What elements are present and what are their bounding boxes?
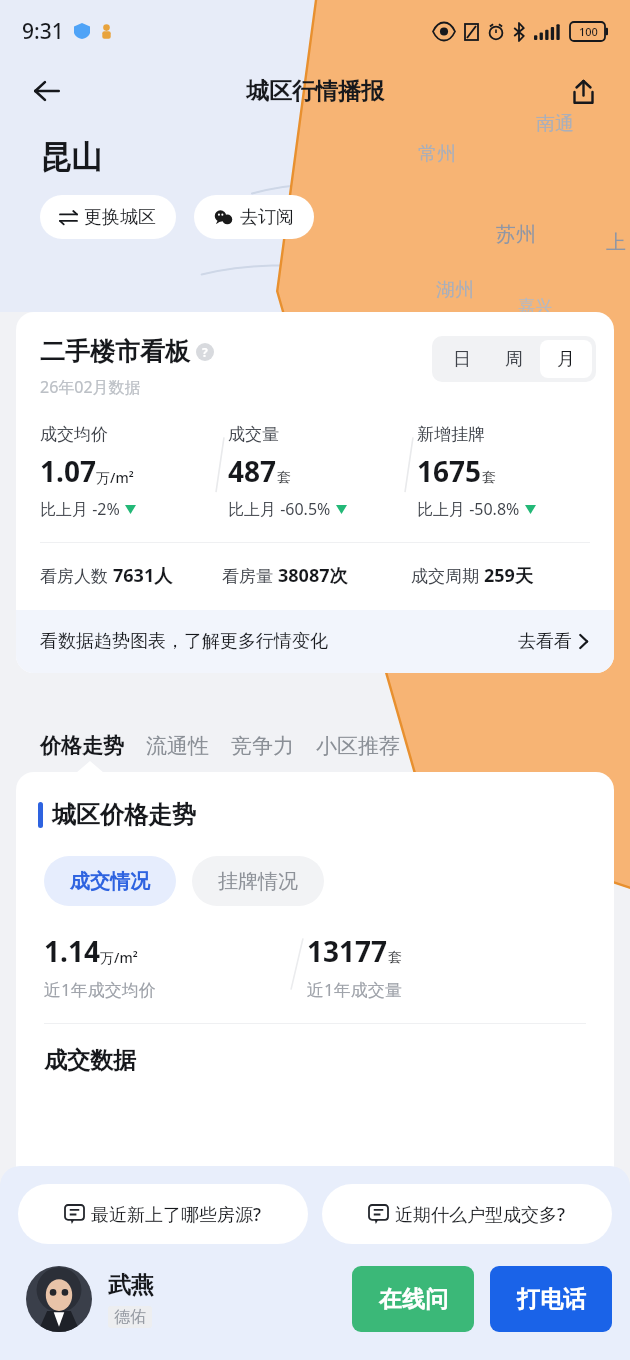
staticText: 万/m² — [100, 948, 138, 967]
staticText: 打电话 — [517, 1285, 586, 1314]
staticText: 7631人 — [113, 563, 173, 588]
button[interactable]: 最近新上了哪些房源? — [18, 1184, 308, 1244]
staticText: 看数据趋势图表，了解更多行情变化 — [40, 630, 328, 653]
staticText: 流通性 — [146, 733, 209, 759]
staticText: 南通 — [536, 112, 574, 136]
staticText: 100 — [579, 24, 598, 39]
button[interactable]: 成交情况 — [44, 856, 176, 906]
staticText: 周 — [505, 348, 523, 371]
button[interactable]: 打电话 — [490, 1266, 612, 1332]
staticText: 比上月 -50.8% — [417, 498, 520, 520]
button[interactable]: 价格走势 — [40, 733, 146, 759]
staticText: 1.14 — [44, 932, 100, 970]
staticText: 比上月 -2% — [40, 498, 120, 520]
staticText: 259天 — [484, 563, 533, 588]
button[interactable]: 周 — [488, 340, 540, 378]
button[interactable]: 小区推荐 — [316, 733, 400, 759]
button[interactable]: 看数据趋势图表，了解更多行情变化 — [16, 610, 614, 673]
staticText: 看房人数 — [40, 564, 113, 587]
staticText: 更换城区 — [84, 206, 156, 229]
button[interactable]: 挂牌情况 — [192, 856, 324, 906]
staticText: 1675 — [417, 452, 482, 490]
staticText: 成交量 — [228, 424, 279, 445]
staticText: 小区推荐 — [316, 733, 400, 759]
staticText: 挂牌情况 — [218, 869, 298, 894]
button[interactable]: 流通性 — [146, 733, 231, 759]
button[interactable]: Share — [560, 68, 606, 114]
staticText: 在线问 — [379, 1285, 448, 1314]
staticText: ? — [202, 344, 208, 360]
button[interactable]: 近期什么户型成交多? — [322, 1184, 612, 1244]
staticText: 常州 — [418, 142, 456, 166]
staticText: 城区行情播报 — [246, 77, 384, 106]
button[interactable]: 去订阅 — [194, 195, 314, 239]
staticText: 月 — [557, 348, 575, 371]
staticText: 487 — [228, 452, 277, 490]
staticText: 新增挂牌 — [417, 424, 485, 445]
staticText: 26年02月数据 — [40, 376, 141, 398]
button[interactable]: 在线问 — [352, 1266, 474, 1332]
staticText: 价格走势 — [40, 733, 124, 759]
staticText: 成交情况 — [70, 869, 150, 894]
button[interactable]: Back — [24, 68, 70, 114]
staticText: 近期什么户型成交多? — [395, 1202, 566, 1227]
staticText: 武燕 — [108, 1271, 154, 1300]
staticText: 套 — [388, 949, 402, 967]
staticText: 苏州 — [496, 222, 536, 247]
staticText: 日 — [453, 348, 471, 371]
staticText: 成交均价 — [40, 424, 108, 445]
staticText: 看房量 — [222, 564, 278, 587]
staticText: 湖州 — [436, 278, 474, 302]
staticText: 成交数据 — [44, 1046, 136, 1075]
staticText: 套 — [482, 469, 496, 487]
staticText: 德佑 — [114, 1307, 146, 1327]
staticText: 去订阅 — [240, 206, 294, 229]
staticText: 1.07 — [40, 452, 96, 490]
button[interactable]: 更换城区 — [40, 195, 176, 239]
button[interactable]: 月 — [540, 340, 592, 378]
staticText: 竞争力 — [231, 733, 294, 759]
staticText: 昆山 — [40, 138, 102, 177]
staticText: 上 — [606, 230, 626, 255]
staticText: 万/m² — [96, 468, 134, 487]
staticText: 套 — [277, 469, 291, 487]
staticText: 最近新上了哪些房源? — [91, 1202, 262, 1227]
staticText: 近1年成交量 — [307, 978, 402, 1001]
staticText: 13177 — [307, 932, 388, 970]
staticText: 城区价格走势 — [52, 800, 196, 830]
staticText: 二手楼市看板 — [40, 336, 190, 367]
staticText: 9:31 — [22, 17, 64, 46]
staticText: 成交周期 — [411, 564, 484, 587]
staticText: 嘉兴 — [518, 296, 552, 317]
staticText: 比上月 -60.5% — [228, 498, 331, 520]
button[interactable]: 说明 — [196, 343, 214, 361]
staticText: 去看看 — [518, 630, 572, 653]
button[interactable]: 日 — [436, 340, 488, 378]
button[interactable]: 竞争力 — [231, 733, 316, 759]
staticText: 38087次 — [278, 563, 348, 588]
staticText: 近1年成交均价 — [44, 978, 156, 1001]
